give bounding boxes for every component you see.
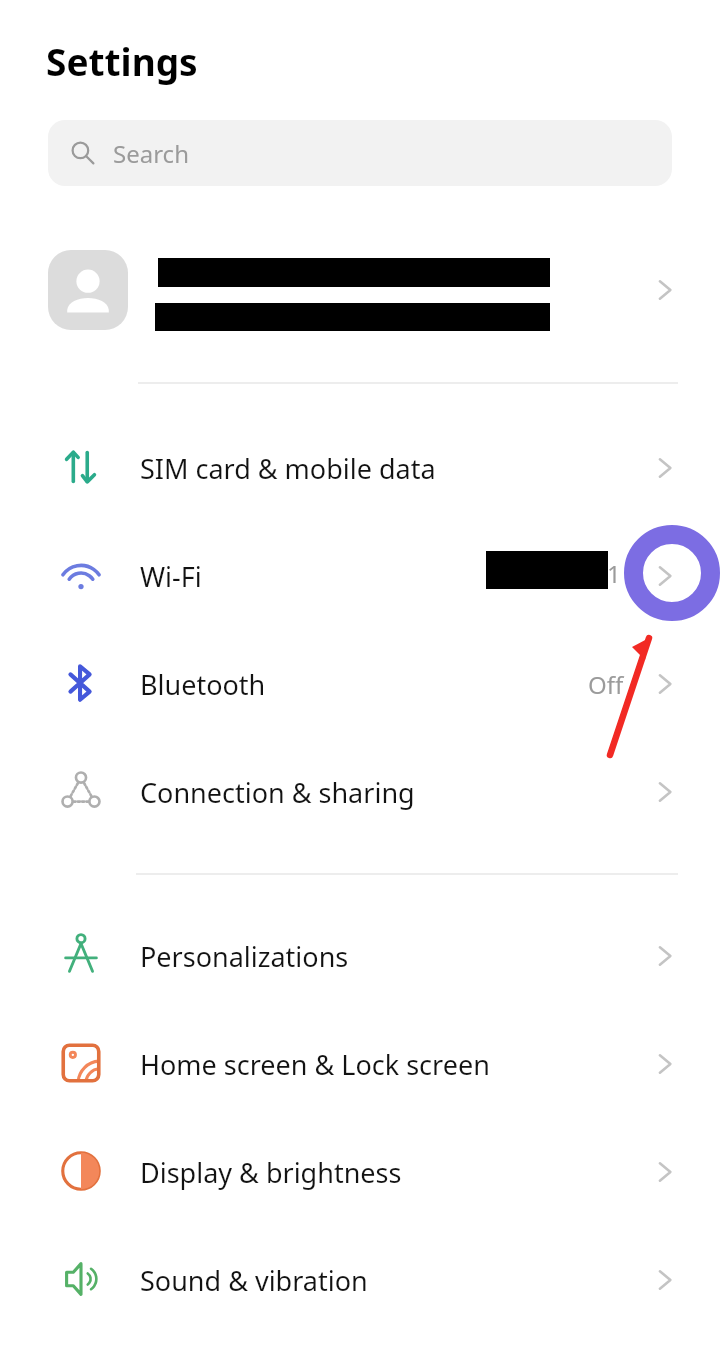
button[interactable]: SIM card & mobile data xyxy=(0,414,720,522)
staticText: Display & brightness xyxy=(140,1154,402,1191)
staticText: Sound & vibration xyxy=(140,1262,368,1299)
button[interactable]: Personalizations xyxy=(0,902,720,1010)
button[interactable]: Bluetooth xyxy=(0,630,720,738)
staticText: Off xyxy=(588,668,624,701)
button[interactable]: Display & brightness xyxy=(0,1118,720,1226)
button[interactable]: Connection & sharing xyxy=(0,738,720,846)
button[interactable]: Sound & vibration xyxy=(0,1226,720,1334)
staticText: Search xyxy=(113,137,189,170)
staticText: 1 xyxy=(607,557,621,590)
staticText: SIM card & mobile data xyxy=(140,450,436,487)
staticText: Connection & sharing xyxy=(140,774,415,811)
staticText: Bluetooth xyxy=(140,666,266,703)
button[interactable]: Account xyxy=(0,230,720,350)
button[interactable]: Search xyxy=(48,120,672,186)
staticText: Home screen & Lock screen xyxy=(140,1046,490,1083)
staticText: Personalizations xyxy=(140,938,349,975)
staticText: Wi-Fi xyxy=(140,558,202,595)
button[interactable]: Home screen & Lock screen xyxy=(0,1010,720,1118)
button[interactable]: Wi-Fi xyxy=(0,522,720,630)
staticText: Settings xyxy=(46,36,198,86)
